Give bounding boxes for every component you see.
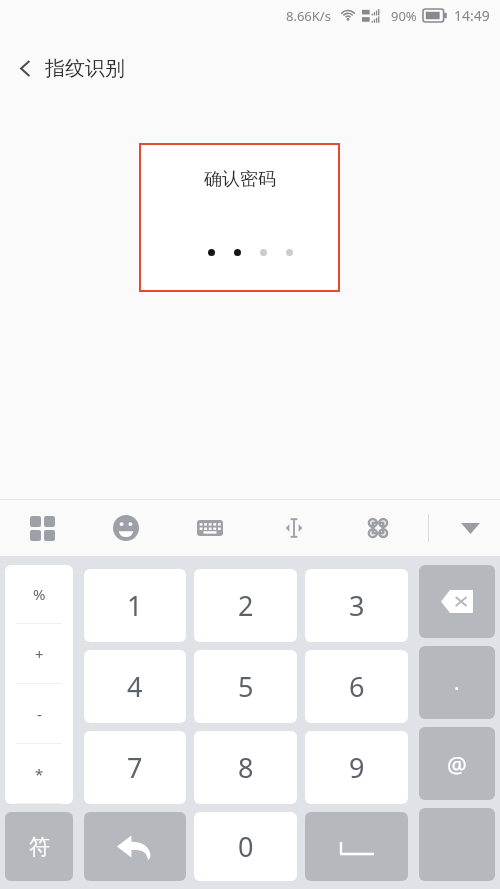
- staticText: -: [37, 704, 42, 724]
- staticText: %: [33, 584, 46, 604]
- button[interactable]: 4: [84, 650, 186, 723]
- staticText: 4: [127, 668, 143, 705]
- staticText: 8: [238, 749, 254, 786]
- staticText: 符: [29, 834, 50, 860]
- staticText: 指纹识别: [45, 56, 125, 81]
- button[interactable]: Hide keyboard: [451, 509, 489, 547]
- button[interactable]: Apps: [22, 508, 62, 548]
- button[interactable]: Shortcuts: [358, 508, 398, 548]
- staticText: 2: [238, 587, 254, 624]
- staticText: 3: [349, 587, 365, 624]
- button[interactable]: Back: [0, 44, 500, 92]
- button[interactable]: 7: [84, 731, 186, 804]
- button[interactable]: Backspace: [419, 565, 495, 638]
- button[interactable]: 6: [305, 650, 408, 723]
- button[interactable]: 5: [194, 650, 297, 723]
- button[interactable]: Keyboard: [190, 508, 230, 548]
- button[interactable]: 2: [194, 569, 297, 642]
- staticText: .: [454, 669, 460, 696]
- staticText: 1: [127, 587, 143, 624]
- staticText: 5: [238, 668, 254, 705]
- staticText: *: [35, 764, 44, 784]
- button[interactable]: 符: [5, 812, 73, 881]
- staticText: 8.66K/s: [286, 7, 331, 25]
- button[interactable]: @: [419, 727, 495, 800]
- button[interactable]: 9: [305, 731, 408, 804]
- button[interactable]: Enter: [84, 812, 186, 881]
- button[interactable]: 3: [305, 569, 408, 642]
- staticText: +: [35, 644, 44, 664]
- staticText: 90%: [391, 7, 417, 25]
- button[interactable]: Emoji: [106, 508, 146, 548]
- button[interactable]: 0: [194, 812, 297, 881]
- staticText: 14:49: [454, 6, 490, 25]
- staticText: 确认密码: [204, 168, 276, 191]
- staticText: 7: [127, 749, 143, 786]
- button[interactable]: Space: [305, 812, 408, 881]
- button[interactable]: -: [5, 684, 73, 743]
- button[interactable]: 1: [84, 569, 186, 642]
- staticText: 6: [349, 668, 365, 705]
- button[interactable]: *: [5, 744, 73, 803]
- other: Back: [19, 59, 32, 78]
- staticText: @: [447, 749, 467, 779]
- staticText: 0: [238, 828, 254, 865]
- button[interactable]: .: [419, 646, 495, 719]
- button[interactable]: %: [5, 565, 73, 623]
- button[interactable]: Move cursor: [274, 508, 314, 548]
- staticText: 9: [349, 749, 365, 786]
- button[interactable]: +: [5, 624, 73, 683]
- button[interactable]: 8: [194, 731, 297, 804]
